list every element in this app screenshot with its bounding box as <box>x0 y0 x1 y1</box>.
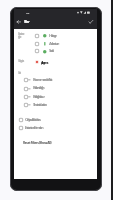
staticText: Shortest duration <box>33 102 46 108</box>
button[interactable]: Toggle option <box>19 118 23 122</box>
staticText: type <box>18 34 21 39</box>
button[interactable]: Toggle option <box>24 103 28 107</box>
staticText: Only available dates <box>25 117 40 123</box>
button[interactable]: All programs <box>33 58 41 66</box>
staticText: Social <box>49 48 53 54</box>
staticText: Categories <box>18 58 23 63</box>
button[interactable]: Reset Filters (Show All) <box>23 139 55 145</box>
button[interactable]: Back <box>16 19 22 25</box>
button[interactable]: Toggle option <box>35 49 39 53</box>
button[interactable]: Toggle option <box>24 87 28 91</box>
button[interactable]: Toggle option <box>35 42 39 46</box>
button[interactable]: Toggle option <box>19 126 23 130</box>
staticText: Price: high to low <box>33 94 44 100</box>
button[interactable]: Filter <box>24 19 33 25</box>
button[interactable]: Toggle option <box>24 95 28 99</box>
staticText: Heritage <box>49 33 56 39</box>
staticText: Filter <box>24 20 29 24</box>
staticText: Recommended first <box>33 77 52 83</box>
button[interactable]: Toggle option <box>35 34 39 38</box>
staticText: All programs <box>41 60 48 65</box>
button[interactable]: Apply filters <box>88 19 94 25</box>
staticText: Price: low to high <box>33 85 44 91</box>
button[interactable]: Toggle option <box>24 78 28 82</box>
staticText: Instant confirmation <box>25 125 43 131</box>
staticText: Reset Filters (Show All) <box>23 140 52 144</box>
staticText: Sort <box>18 70 20 75</box>
staticText: 3:30 <box>26 12 29 15</box>
staticText: Experience <box>18 31 24 36</box>
staticText: Adventure <box>49 41 58 47</box>
